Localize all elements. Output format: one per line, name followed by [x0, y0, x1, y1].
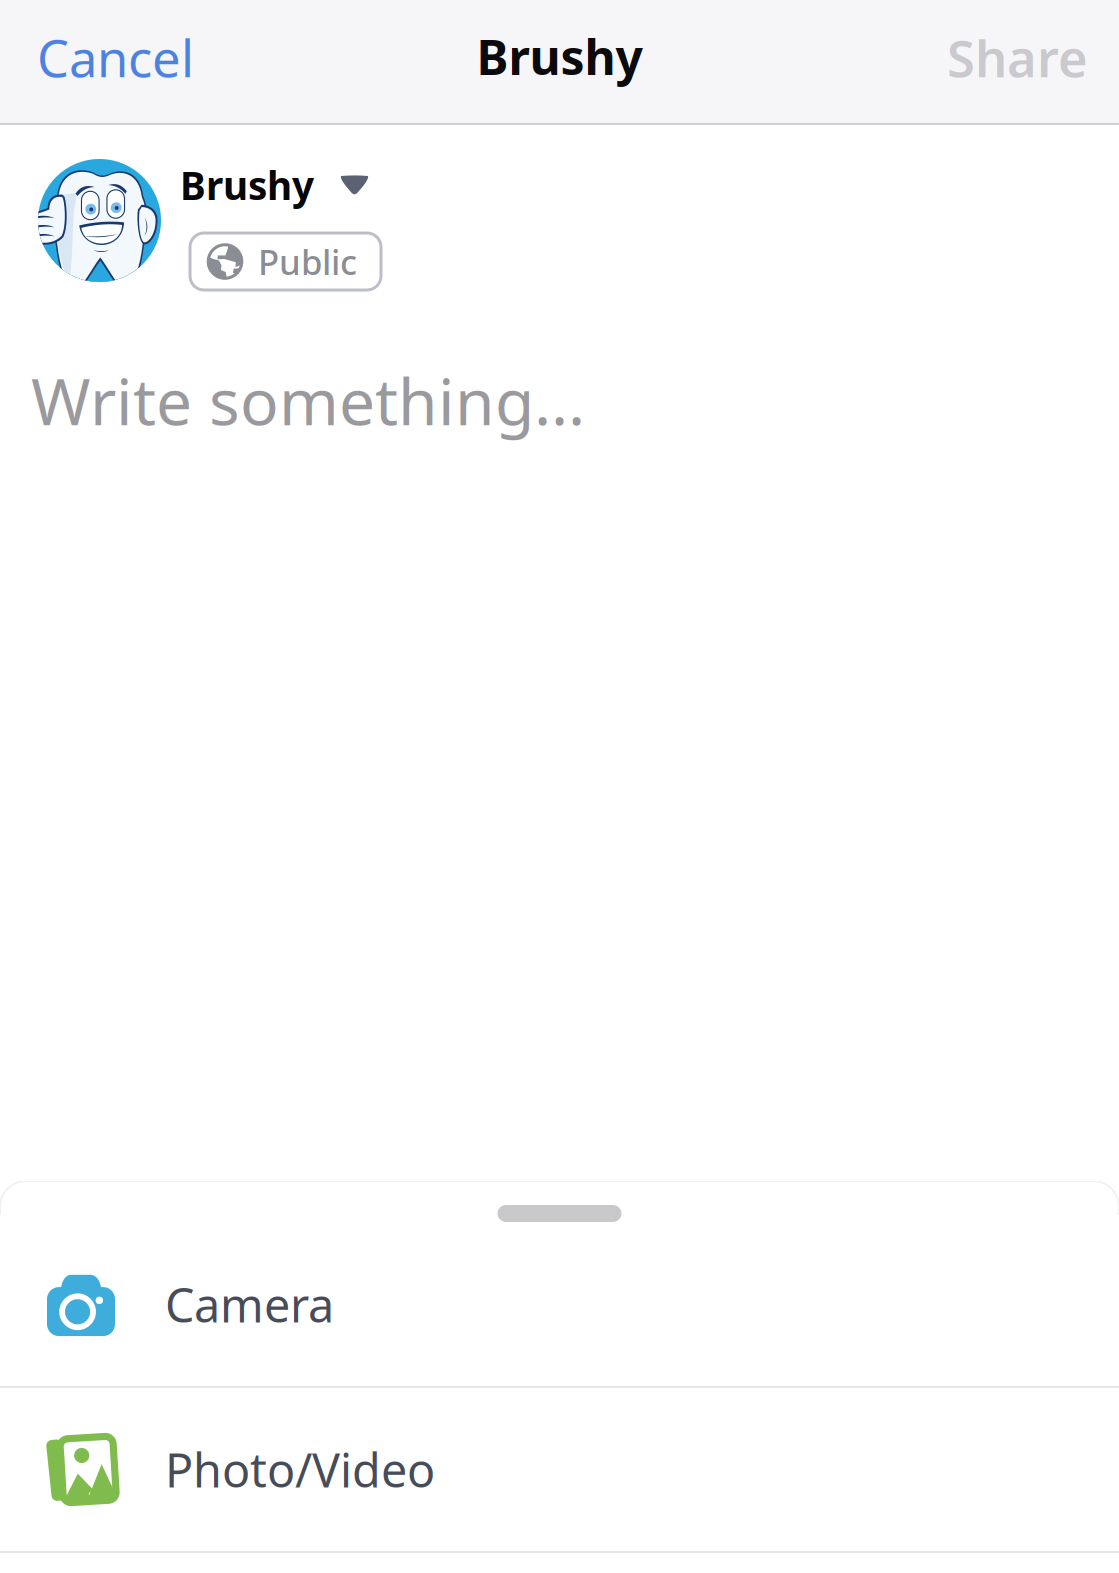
button[interactable]: Photo/Video — [0, 1388, 1119, 1551]
staticText: Brushy — [476, 25, 642, 88]
staticText: Brushy — [180, 159, 314, 211]
staticText: Photo/Video — [165, 1438, 435, 1500]
staticText: Public — [258, 238, 357, 284]
button[interactable]: Brushy — [180, 159, 369, 211]
button[interactable]: Public — [190, 233, 381, 290]
button[interactable]: Camera — [0, 1223, 1119, 1386]
button[interactable]: Cancel — [0, 0, 231, 123]
staticText: Camera — [165, 1273, 334, 1335]
staticText: Share — [947, 24, 1088, 91]
staticText: Cancel — [37, 24, 194, 91]
button[interactable]: Share — [916, 0, 1119, 123]
staticText: Write something... — [31, 358, 585, 443]
